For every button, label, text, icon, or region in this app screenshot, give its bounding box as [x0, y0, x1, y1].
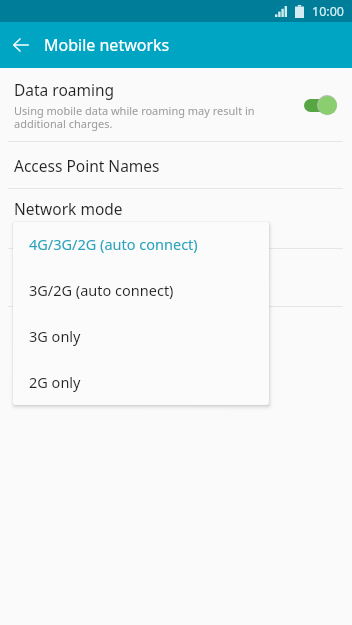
staticText: 4G/3G/2G (auto connect): [29, 234, 198, 254]
button[interactable]: 4G/3G/2G (auto connect): [13, 222, 269, 267]
staticText: 10:00: [312, 3, 344, 20]
button[interactable]: Back: [0, 22, 44, 68]
staticText: 3G only: [29, 326, 81, 346]
staticText: 2G only: [29, 372, 81, 392]
button[interactable]: 3G/2G (auto connect): [13, 267, 269, 313]
staticText: 3G/2G (auto connect): [29, 280, 174, 300]
button[interactable]: 2G only: [13, 359, 269, 404]
staticText: Mobile networks: [44, 34, 170, 56]
button[interactable]: Data roaming: [0, 68, 352, 141]
staticText: Access Point Names: [14, 155, 160, 176]
staticText: Using mobile data while roaming may resu…: [14, 103, 255, 131]
staticText: Network mode: [14, 198, 123, 219]
button[interactable]: Access Point Names: [0, 142, 352, 188]
staticText: Data roaming: [14, 79, 115, 100]
button[interactable]: Network mode: [0, 189, 352, 248]
button[interactable]: [0, 249, 352, 306]
button[interactable]: Data roaming switch, on: [304, 94, 337, 116]
button[interactable]: 3G only: [13, 313, 269, 359]
